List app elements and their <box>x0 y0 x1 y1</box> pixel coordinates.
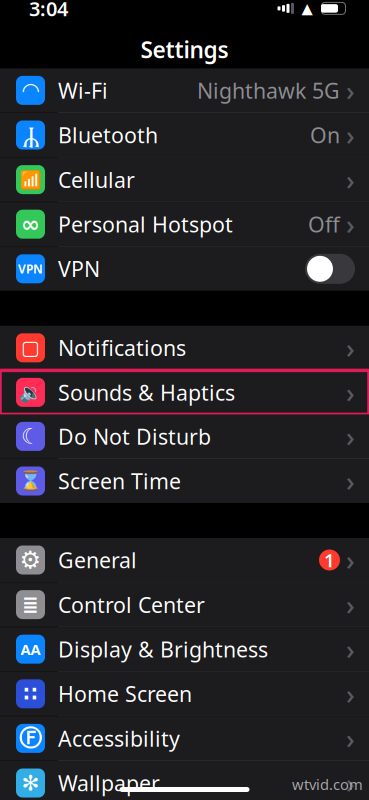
staticText: Bluetooth <box>58 121 158 149</box>
staticText: ▲ <box>301 0 312 17</box>
staticText: 📶 <box>19 170 41 189</box>
button[interactable]: ⌛ <box>0 459 369 503</box>
staticText: Screen Time <box>58 467 181 495</box>
button[interactable]: ≣ <box>0 583 369 627</box>
staticText: ᛦ <box>22 122 38 148</box>
staticText: › <box>346 206 355 242</box>
staticText: › <box>346 73 355 108</box>
staticText: 1 <box>324 548 335 572</box>
staticText: ⌛ <box>19 470 42 492</box>
staticText: › <box>346 631 355 667</box>
staticText: On <box>310 121 340 149</box>
staticText: › <box>346 330 355 365</box>
staticText: ✻ <box>21 771 39 795</box>
staticText: ▢ <box>21 336 40 359</box>
staticText: › <box>346 542 355 578</box>
staticText: Off <box>308 210 340 238</box>
button[interactable]: VPN <box>0 247 369 291</box>
staticText: 🔉 <box>19 382 42 403</box>
staticText: AA <box>20 639 40 659</box>
button[interactable]: Ⓕ <box>0 716 369 760</box>
staticText: Wi-Fi <box>58 76 108 104</box>
staticText: ⚙ <box>19 546 41 574</box>
staticText: › <box>346 587 355 622</box>
staticText: Wallpaper <box>58 769 160 797</box>
staticText: › <box>346 117 355 153</box>
staticText: Accessibility <box>58 724 180 752</box>
button[interactable]: ✻ <box>0 761 369 800</box>
button[interactable]: AA <box>0 627 369 671</box>
staticText: › <box>346 162 355 197</box>
button[interactable]: 📶 <box>0 158 369 202</box>
button[interactable]: ∞ <box>0 202 369 246</box>
staticText: Notifications <box>58 334 186 362</box>
staticText: VPN <box>58 255 100 283</box>
staticText: Do Not Disturb <box>58 422 211 450</box>
button[interactable]: ⚙ <box>0 538 369 582</box>
staticText: Personal Hotspot <box>58 210 233 238</box>
staticText: Control Center <box>58 590 205 619</box>
button[interactable]: ∷ <box>0 672 369 716</box>
staticText: › <box>346 375 355 410</box>
staticText: Home Screen <box>58 680 192 708</box>
staticText: VPN <box>18 261 43 277</box>
button[interactable]: ◠ <box>0 68 369 112</box>
staticText: Cellular <box>58 165 135 194</box>
button[interactable]: ᛦ <box>0 113 369 157</box>
staticText: › <box>346 676 355 711</box>
staticText: ∷ <box>23 682 37 705</box>
staticText: › <box>346 765 355 800</box>
staticText: General <box>58 546 137 574</box>
staticText: Sounds & Haptics <box>58 378 235 406</box>
staticText: ◠ <box>22 78 38 102</box>
staticText: Nighthawk 5G <box>197 76 340 104</box>
staticText: ∞ <box>21 211 40 237</box>
staticText: › <box>346 721 355 756</box>
staticText: Display & Brightness <box>58 635 268 663</box>
button[interactable]: 🔉 <box>0 370 369 414</box>
staticText: › <box>346 463 355 499</box>
staticText: Ⓕ <box>19 724 42 752</box>
staticText: ≣ <box>22 593 39 616</box>
staticText: ☾ <box>21 424 40 448</box>
button[interactable]: ☾ <box>0 414 369 458</box>
staticText: 3:04 <box>29 0 68 22</box>
staticText: Settings <box>140 34 228 64</box>
staticText: wtvid.com <box>292 774 363 794</box>
button[interactable]: ▢ <box>0 326 369 370</box>
staticText: › <box>346 419 355 454</box>
